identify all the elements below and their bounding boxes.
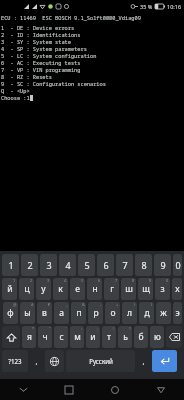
button[interactable]: Русский [66, 350, 135, 372]
staticText: ' [66, 326, 67, 331]
button[interactable]: , [30, 350, 43, 372]
button[interactable]: х [172, 278, 182, 300]
button[interactable]: Recent apps [46, 379, 92, 400]
staticText: д [144, 307, 150, 319]
staticText: з [160, 283, 165, 295]
button[interactable]: 6 [97, 254, 114, 276]
button[interactable]: 9 [154, 254, 171, 276]
button[interactable]: ц [19, 278, 34, 300]
button[interactable]: 2 [21, 254, 38, 276]
staticText: ?123 [8, 357, 22, 365]
staticText: ю [154, 331, 161, 343]
staticText: ф [7, 307, 14, 319]
button[interactable]: Back [138, 379, 184, 400]
staticText: ; [97, 326, 99, 331]
button[interactable]: н [87, 278, 102, 300]
staticText: 7 - VP : VIN programming [1, 66, 81, 73]
button[interactable]: , [137, 350, 150, 372]
staticText: Choose :1 [1, 94, 30, 101]
staticText: 10:16 [167, 3, 182, 10]
button[interactable]: 4 [59, 254, 76, 276]
button[interactable]: Home [92, 379, 138, 400]
staticText: " [49, 326, 51, 331]
staticText: 8 [141, 259, 147, 271]
staticText: ₽ [48, 302, 51, 307]
staticText: Русский [89, 357, 113, 365]
staticText: @ [13, 302, 17, 307]
button[interactable]: 3 [40, 254, 57, 276]
staticText: м [74, 331, 81, 343]
button[interactable]: 0 [173, 254, 182, 276]
staticText: # [31, 302, 34, 307]
staticText: ц [24, 283, 30, 295]
staticText: Q - <Up> [1, 87, 30, 94]
staticText: 9 - SC : Configuration scenarios [1, 80, 106, 87]
button[interactable]: г [104, 278, 119, 300]
button[interactable]: б [134, 326, 148, 348]
staticText: 8 - RZ : Resets [1, 73, 52, 80]
button[interactable]: д [139, 302, 154, 324]
button[interactable]: т [102, 326, 116, 348]
button[interactable]: 8 [135, 254, 152, 276]
staticText: 9 [149, 278, 152, 283]
staticText: 8 [132, 278, 135, 283]
button[interactable]: м [70, 326, 84, 348]
button[interactable]: щ [138, 278, 153, 300]
staticText: п [76, 307, 82, 319]
staticText: 4 [65, 259, 71, 271]
button[interactable]: п [71, 302, 86, 324]
button[interactable]: Shift [2, 326, 20, 348]
button[interactable]: Change language [45, 350, 64, 372]
staticText: * [32, 326, 35, 331]
staticText: 1 - DE : Device errors [1, 24, 75, 31]
button[interactable]: ю [150, 326, 164, 348]
button[interactable]: й [2, 278, 17, 300]
staticText: 2 [27, 259, 33, 271]
button[interactable]: к [53, 278, 68, 300]
button[interactable]: е [70, 278, 85, 300]
staticText: э [175, 307, 180, 319]
staticText: ECU : 11469 ESC BOSCH 9.1_Solft0000_Vdia… [1, 14, 141, 21]
button[interactable]: а [54, 302, 69, 324]
button[interactable]: р [88, 302, 103, 324]
button[interactable]: л [122, 302, 137, 324]
button[interactable]: с [54, 326, 68, 348]
button[interactable]: 5 [78, 254, 95, 276]
button[interactable]: я [22, 326, 36, 348]
button[interactable]: Backspace [166, 326, 182, 348]
button[interactable]: у [36, 278, 51, 300]
staticText: _ [66, 302, 68, 307]
staticText: 2 - ID : Identifications [1, 31, 81, 38]
button[interactable]: ь [118, 326, 132, 348]
staticText: 5 - LC : System configuration [1, 52, 97, 59]
button[interactable]: ж [156, 302, 171, 324]
button[interactable]: 7 [116, 254, 133, 276]
button[interactable]: ф [3, 302, 18, 324]
staticText: ? [129, 326, 131, 331]
button[interactable]: Enter [152, 350, 177, 372]
staticText: 7 [122, 259, 128, 271]
button[interactable]: о [105, 302, 120, 324]
staticText: ь [123, 331, 128, 343]
button[interactable]: з [155, 278, 170, 300]
button[interactable]: ?123 [2, 350, 28, 372]
button[interactable]: ы [20, 302, 35, 324]
staticText: ) [151, 302, 153, 307]
staticText: 0 [175, 259, 181, 271]
button[interactable]: Hide keyboard [0, 379, 46, 400]
staticText: 1 [13, 278, 16, 283]
button[interactable]: ч [38, 326, 52, 348]
staticText: 9 [160, 259, 166, 271]
staticText: 4 - SP : System parameters [1, 45, 87, 52]
button[interactable]: и [86, 326, 100, 348]
button[interactable]: ш [121, 278, 136, 300]
staticText: х [175, 283, 180, 295]
staticText: 4 [64, 278, 67, 283]
staticText: 6 [103, 259, 109, 271]
button[interactable]: э [173, 302, 182, 324]
staticText: 1 [8, 259, 14, 271]
staticText: 5 [81, 278, 84, 283]
button[interactable]: 1 [2, 254, 19, 276]
staticText: о [110, 307, 116, 319]
button[interactable]: в [37, 302, 52, 324]
